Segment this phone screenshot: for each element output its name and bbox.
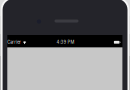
staticText: 4:39 PM — [57, 40, 75, 45]
staticText: Carrier — [7, 40, 21, 45]
